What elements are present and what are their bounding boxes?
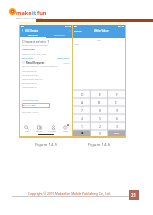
staticText: Connected (22, 47, 35, 50)
staticText: 9 (116, 108, 118, 113)
button[interactable]: Devices (33, 124, 46, 133)
staticText: Notify enabled ok (22, 86, 37, 88)
staticText: 3 (116, 124, 118, 129)
staticText: 6 (116, 116, 118, 121)
staticText: 0x0 (75, 43, 79, 46)
staticText: Devices (36, 130, 43, 132)
other: Back (21, 29, 24, 32)
staticText: A (81, 100, 84, 105)
staticText: E (99, 92, 101, 97)
staticText: 4 (81, 116, 83, 121)
staticText: Text (73, 39, 125, 42)
button[interactable]: E (91, 90, 108, 98)
staticText: 21 (131, 192, 137, 198)
staticText: 0F1 0A1 0EE (23, 104, 36, 107)
button[interactable]: READ DATA (22, 57, 34, 60)
staticText: Properties: read, write, notify (22, 53, 47, 55)
staticText: BLE Device (25, 29, 39, 33)
button[interactable]: Backspace (73, 130, 91, 136)
staticText: Profile (50, 130, 56, 132)
button[interactable]: Alerts (59, 124, 72, 133)
staticText: Value changed 0x0F 0x1A (22, 78, 43, 80)
button[interactable]: 0 (91, 130, 108, 136)
button[interactable]: A (73, 98, 91, 106)
staticText: Write value (hex) (22, 99, 39, 102)
staticText: fun (37, 9, 47, 17)
staticText: 0 (99, 131, 101, 136)
button[interactable]: 8 (91, 106, 108, 114)
button[interactable]: B (91, 98, 108, 106)
button[interactable]: C (108, 98, 125, 106)
button[interactable]: 9 (108, 106, 125, 114)
staticText: Descriptor read ok (22, 82, 37, 84)
button[interactable]: 4 (73, 114, 91, 122)
staticText: Figure 14-6 (72, 142, 126, 148)
button[interactable]: 3 (108, 122, 125, 130)
staticText: 12:04:22 (63, 62, 70, 64)
button[interactable]: CONSOLE (46, 33, 72, 38)
staticText: Write Request sent (22, 70, 37, 72)
staticText: SERVICES (28, 34, 39, 37)
staticText: make (16, 9, 32, 17)
button[interactable]: 0F1 0A1 0EE (22, 103, 50, 108)
staticText: B (98, 100, 101, 105)
button[interactable]: Send (108, 130, 125, 136)
staticText: make it yours make it fun (16, 17, 43, 20)
staticText: 5 (99, 116, 101, 121)
staticText: 2 (99, 124, 101, 129)
staticText: 0x02 0xA1 0x00 0x3F - response received … (22, 65, 58, 67)
button[interactable]: WRITE DATA (57, 57, 70, 60)
staticText: D (81, 92, 84, 97)
staticText: F (116, 92, 118, 97)
button[interactable]: D (73, 90, 91, 98)
button[interactable]: 1 (73, 122, 91, 130)
staticText: Copyright © 2015 Makeitfun Mobile Publis… (28, 192, 111, 196)
button[interactable]: Profile (46, 124, 59, 133)
button[interactable]: 5 (91, 114, 108, 122)
staticText: Characteristic 1 (22, 39, 50, 44)
staticText: CONSOLE (54, 34, 65, 37)
staticText: 8 (99, 108, 101, 113)
button[interactable]: 7 (73, 106, 91, 114)
button[interactable]: F (108, 90, 125, 98)
staticText: 0000ffe1-0000-1000-8000-00805f (22, 44, 49, 46)
staticText: 7 (81, 108, 83, 113)
button[interactable]: SERVICES (20, 33, 46, 38)
button[interactable]: 6 (108, 114, 125, 122)
button[interactable]: Scan (20, 124, 33, 133)
staticText: Scan (25, 130, 29, 132)
staticText: Write Value (94, 29, 109, 33)
staticText: 1 (81, 124, 83, 129)
staticText: Read Request (26, 61, 45, 65)
button[interactable]: 2 (91, 122, 108, 130)
staticText: Last update 12:04:22 (22, 111, 39, 113)
staticText: Figure 14-5 (19, 142, 73, 148)
button[interactable]: Back (21, 28, 71, 33)
staticText: Send (114, 132, 120, 135)
staticText: Notification received (22, 74, 39, 76)
button[interactable]: Cancel (74, 29, 82, 32)
staticText: C (115, 100, 118, 105)
staticText: it (32, 9, 37, 17)
staticText: Alerts (63, 130, 68, 132)
button[interactable]: Read Request (22, 60, 70, 65)
